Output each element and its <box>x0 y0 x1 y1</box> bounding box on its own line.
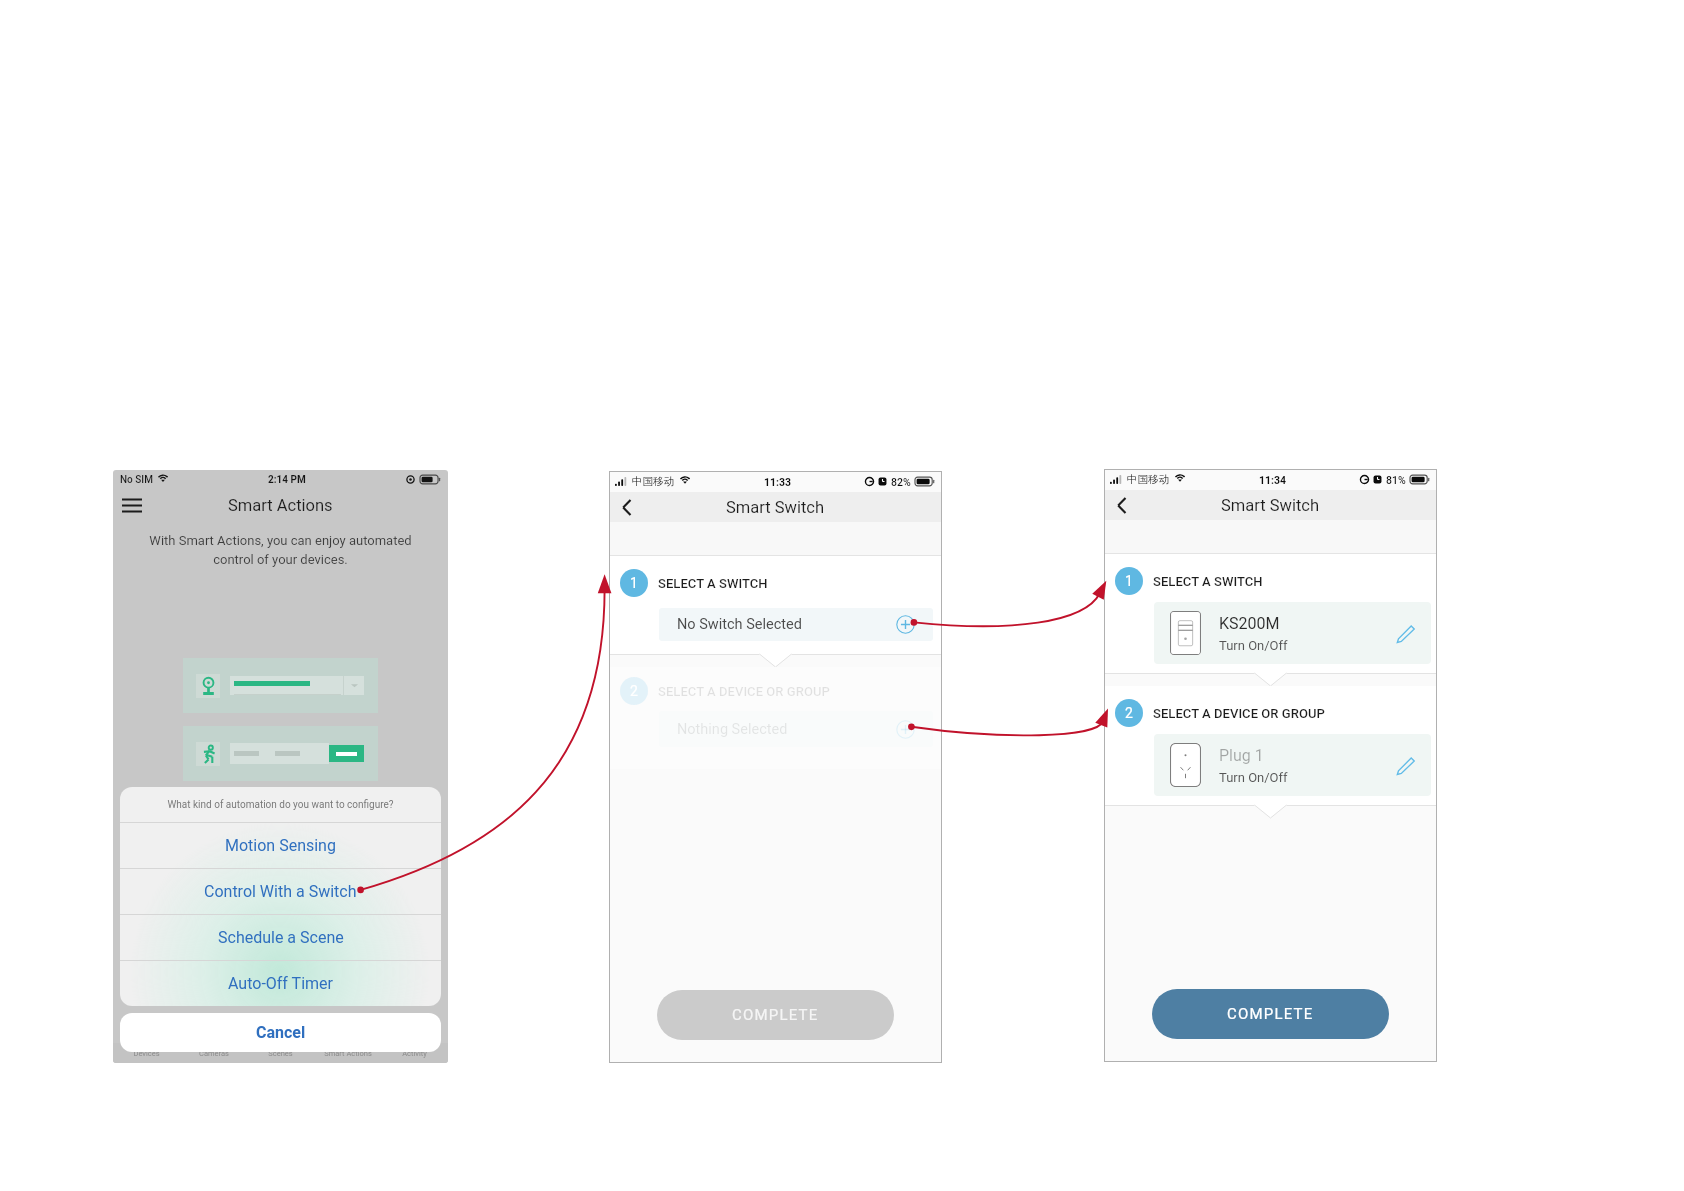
staticText: Scenes <box>268 1049 293 1058</box>
button[interactable]: Control With a Switch <box>120 869 441 914</box>
staticText: 1 <box>630 575 638 591</box>
button[interactable] <box>183 726 378 781</box>
button[interactable] <box>183 658 378 713</box>
button[interactable]: Plug 1 <box>1154 734 1431 796</box>
button[interactable]: Cancel <box>120 1013 441 1052</box>
staticText: 2 <box>1125 705 1133 721</box>
button[interactable]: KS200M <box>1154 602 1431 664</box>
button[interactable]: No Switch Selected <box>659 608 933 641</box>
staticText: No SIM <box>120 474 153 486</box>
staticText: Smart Switch <box>726 498 825 517</box>
staticText: What kind of automation do you want to c… <box>167 799 394 811</box>
button[interactable]: COMPLETE <box>657 990 894 1040</box>
staticText: SELECT A SWITCH <box>658 576 768 591</box>
staticText: SELECT A SWITCH <box>1153 574 1263 589</box>
staticText: 82% <box>891 476 911 488</box>
staticText: 中国移动 <box>632 475 674 488</box>
button[interactable]: Smart Actions <box>314 1043 381 1063</box>
staticText: Smart Actions <box>228 496 333 515</box>
staticText: Plug 1 <box>1219 746 1264 765</box>
staticText: 2 <box>630 683 638 699</box>
staticText: Nothing Selected <box>677 721 788 738</box>
staticText: No Switch Selected <box>677 616 802 633</box>
staticText: 11:33 <box>764 476 792 488</box>
staticText: 81% <box>1386 474 1406 486</box>
button[interactable]: Cameras <box>180 1043 247 1063</box>
staticText: 2:14 PM <box>268 474 306 486</box>
button[interactable]: Devices <box>113 1043 180 1063</box>
staticText: COMPLETE <box>732 1006 819 1024</box>
button[interactable]: Back <box>614 494 640 520</box>
staticText: SELECT A DEVICE OR GROUP <box>1153 706 1325 721</box>
button[interactable]: Schedule a Scene <box>120 915 441 960</box>
button[interactable]: Nothing Selected <box>659 711 933 747</box>
staticText: Turn On/Off <box>1219 770 1288 785</box>
staticText: Devices <box>133 1049 160 1058</box>
button[interactable]: Edit <box>1393 621 1417 645</box>
staticText: With Smart Actions, you can enjoy automa… <box>139 533 422 568</box>
button[interactable]: Add device <box>896 720 915 739</box>
button[interactable]: Add switch <box>896 615 915 634</box>
staticText: SELECT A DEVICE OR GROUP <box>658 684 830 699</box>
button[interactable]: COMPLETE <box>1152 989 1389 1039</box>
staticText: Auto-Off Timer <box>228 974 333 993</box>
button[interactable]: Activity <box>381 1043 448 1063</box>
button[interactable]: Menu <box>119 493 144 518</box>
button[interactable]: Motion Sensing <box>120 823 441 868</box>
staticText: Schedule a Scene <box>218 928 344 947</box>
staticText: Turn On/Off <box>1219 638 1288 653</box>
staticText: 1 <box>1125 573 1133 589</box>
staticText: Motion Sensing <box>225 836 336 855</box>
staticText: Smart Actions <box>324 1049 372 1058</box>
staticText: KS200M <box>1219 614 1280 633</box>
staticText: Control With a Switch <box>204 882 357 901</box>
staticText: Smart Switch <box>1221 496 1320 515</box>
staticText: 11:34 <box>1259 474 1287 486</box>
staticText: Cancel <box>256 1023 306 1042</box>
button[interactable]: Edit <box>1393 753 1417 777</box>
staticText: COMPLETE <box>1227 1005 1314 1023</box>
button[interactable]: Back <box>1109 492 1135 518</box>
staticText: Cameras <box>199 1049 229 1058</box>
staticText: Activity <box>402 1049 427 1058</box>
button[interactable]: Auto-Off Timer <box>120 961 441 1006</box>
staticText: 中国移动 <box>1127 473 1169 486</box>
button[interactable]: Scenes <box>247 1043 314 1063</box>
